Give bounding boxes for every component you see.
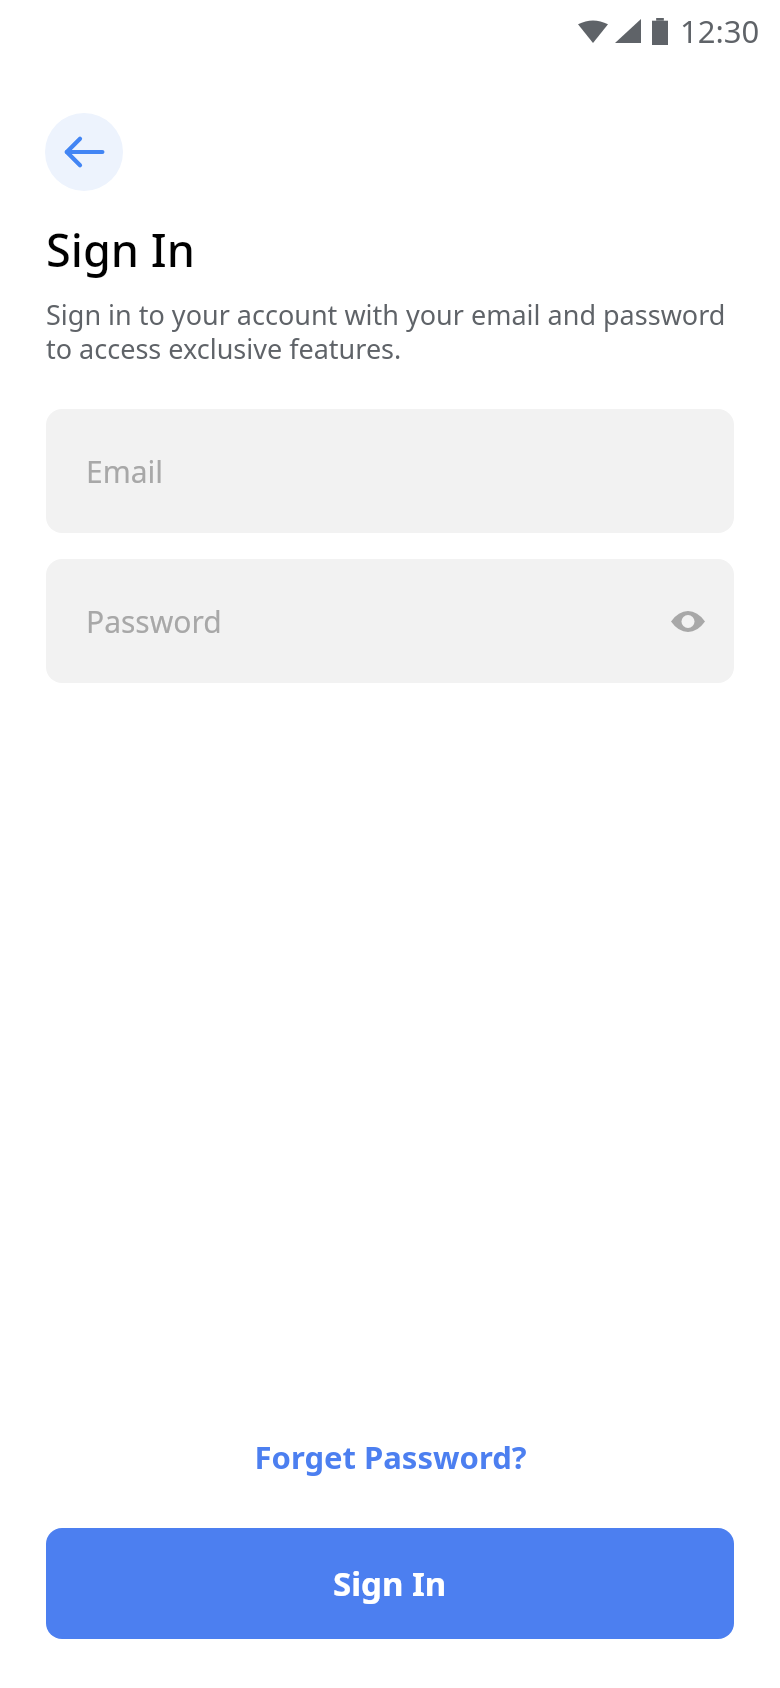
staticText: Password [86, 601, 222, 642]
button[interactable]: Back [45, 113, 123, 191]
button[interactable]: Password [46, 559, 734, 683]
staticText: Sign In [46, 219, 195, 280]
staticText: Sign in to your account with your email … [46, 296, 738, 367]
staticText: 12:30 [680, 10, 760, 52]
button[interactable]: Sign In [46, 1528, 734, 1639]
staticText: Sign In [333, 1561, 447, 1606]
button[interactable]: Show password [662, 595, 714, 647]
staticText: Email [86, 451, 164, 492]
staticText: Forget Password? [254, 1436, 527, 1478]
button[interactable]: Email [46, 409, 734, 533]
button[interactable]: Forget Password? [238, 1426, 543, 1488]
